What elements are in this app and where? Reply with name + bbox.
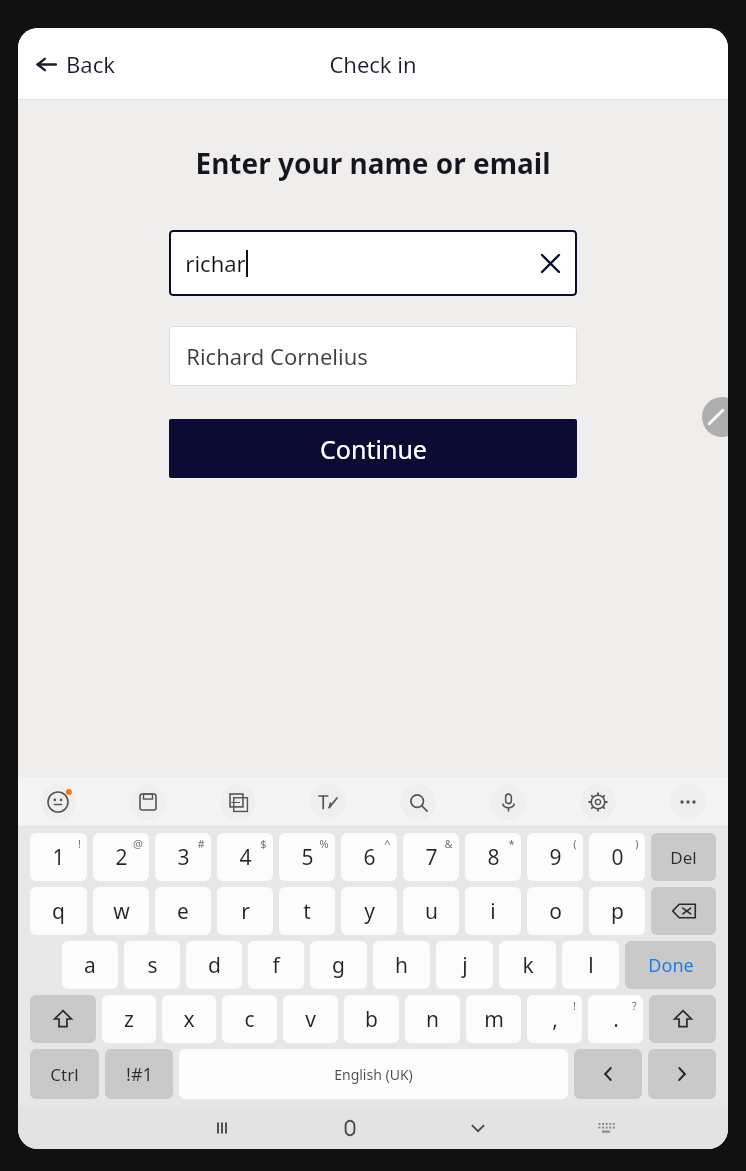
button[interactable]: 2 [93, 833, 149, 881]
staticText: u [425, 897, 438, 926]
button[interactable]: t [279, 887, 335, 935]
button[interactable]: c [222, 995, 277, 1043]
staticText: 5 [301, 843, 314, 872]
button[interactable]: x [162, 995, 216, 1043]
button[interactable]: Stickers [220, 784, 256, 820]
staticText: & [444, 836, 453, 851]
button[interactable]: Emoji [40, 784, 76, 820]
staticText: b [365, 1005, 378, 1034]
button[interactable]: p [589, 887, 645, 935]
staticText: m [484, 1005, 504, 1034]
button[interactable]: y [341, 887, 397, 935]
staticText: , [552, 1005, 558, 1034]
staticText: x [183, 1005, 195, 1034]
button[interactable]: h [373, 941, 430, 989]
button[interactable]: f [248, 941, 304, 989]
button[interactable]: Voice input [490, 784, 526, 820]
staticText: ! [78, 836, 81, 851]
button[interactable]: q [30, 887, 87, 935]
button[interactable]: Search [400, 784, 436, 820]
button[interactable]: 0 [589, 833, 645, 881]
button[interactable]: Hide keyboard [542, 1107, 670, 1149]
button[interactable]: Clear text [531, 244, 569, 282]
button[interactable]: n [405, 995, 460, 1043]
staticText: n [426, 1005, 439, 1034]
staticText: r [241, 897, 250, 926]
button[interactable]: Backspace [651, 887, 716, 935]
button[interactable]: Continue [169, 419, 577, 478]
button[interactable]: Home [286, 1107, 414, 1149]
button[interactable]: 1 [30, 833, 87, 881]
button[interactable]: Clipboard [130, 784, 166, 820]
button[interactable]: 6 [341, 833, 397, 881]
button[interactable]: . [588, 995, 643, 1043]
staticText: @ [133, 836, 143, 851]
button[interactable]: g [310, 941, 367, 989]
button[interactable]: z [102, 995, 156, 1043]
button[interactable]: Settings [580, 784, 616, 820]
staticText: j [462, 951, 468, 980]
staticText: k [522, 951, 534, 980]
button[interactable]: Recents [158, 1107, 286, 1149]
button[interactable]: d [186, 941, 242, 989]
button[interactable]: 4 [217, 833, 273, 881]
staticText: Ctrl [50, 1063, 79, 1086]
staticText: 1 [52, 843, 65, 872]
button[interactable]: v [283, 995, 338, 1043]
button[interactable]: Back [26, 41, 125, 87]
staticText: ( [573, 836, 577, 851]
button[interactable]: o [527, 887, 583, 935]
button[interactable]: i [465, 887, 521, 935]
staticText: 4 [239, 843, 252, 872]
button[interactable]: richar [169, 230, 577, 296]
staticText: 8 [487, 843, 500, 872]
button[interactable]: Shift [30, 995, 96, 1043]
button[interactable]: Ctrl [30, 1049, 99, 1099]
staticText: Done [648, 953, 694, 978]
staticText: 0 [611, 843, 624, 872]
staticText: p [611, 897, 624, 926]
staticText: s [147, 951, 158, 980]
staticText: g [332, 951, 345, 980]
button[interactable]: Next [648, 1049, 716, 1099]
staticText: ) [635, 836, 639, 851]
button[interactable]: Handwriting [310, 784, 346, 820]
button[interactable]: k [499, 941, 556, 989]
button[interactable]: e [155, 887, 211, 935]
button[interactable]: l [562, 941, 619, 989]
button[interactable]: !#1 [105, 1049, 173, 1099]
button[interactable]: w [93, 887, 149, 935]
button[interactable]: 8 [465, 833, 521, 881]
button[interactable]: , [527, 995, 582, 1043]
button[interactable]: Del [651, 833, 716, 881]
button[interactable]: b [344, 995, 399, 1043]
button[interactable]: j [436, 941, 493, 989]
button[interactable]: s [124, 941, 180, 989]
button[interactable]: a [62, 941, 118, 989]
staticText: o [549, 897, 562, 926]
button[interactable]: Edit [702, 397, 728, 437]
button[interactable]: Done [625, 941, 716, 989]
button[interactable]: r [217, 887, 273, 935]
button[interactable]: 9 [527, 833, 583, 881]
staticText: Check in [329, 49, 417, 79]
button[interactable]: 7 [403, 833, 459, 881]
button[interactable]: Back [414, 1107, 542, 1149]
button[interactable]: Richard Cornelius [169, 326, 577, 386]
button[interactable]: Shift [649, 995, 716, 1043]
staticText: 3 [177, 843, 190, 872]
button[interactable]: 5 [279, 833, 335, 881]
button[interactable]: More options [670, 784, 706, 820]
staticText: w [113, 897, 130, 926]
staticText: i [490, 897, 496, 926]
button[interactable]: Space [179, 1049, 568, 1099]
staticText: . [613, 1005, 619, 1034]
staticText: ^ [384, 836, 391, 851]
staticText: Richard Cornelius [186, 341, 368, 371]
button[interactable]: Previous [574, 1049, 642, 1099]
button[interactable]: 3 [155, 833, 211, 881]
button[interactable]: u [403, 887, 459, 935]
button[interactable]: m [466, 995, 521, 1043]
staticText: $ [260, 836, 267, 851]
staticText: Back [66, 49, 115, 79]
